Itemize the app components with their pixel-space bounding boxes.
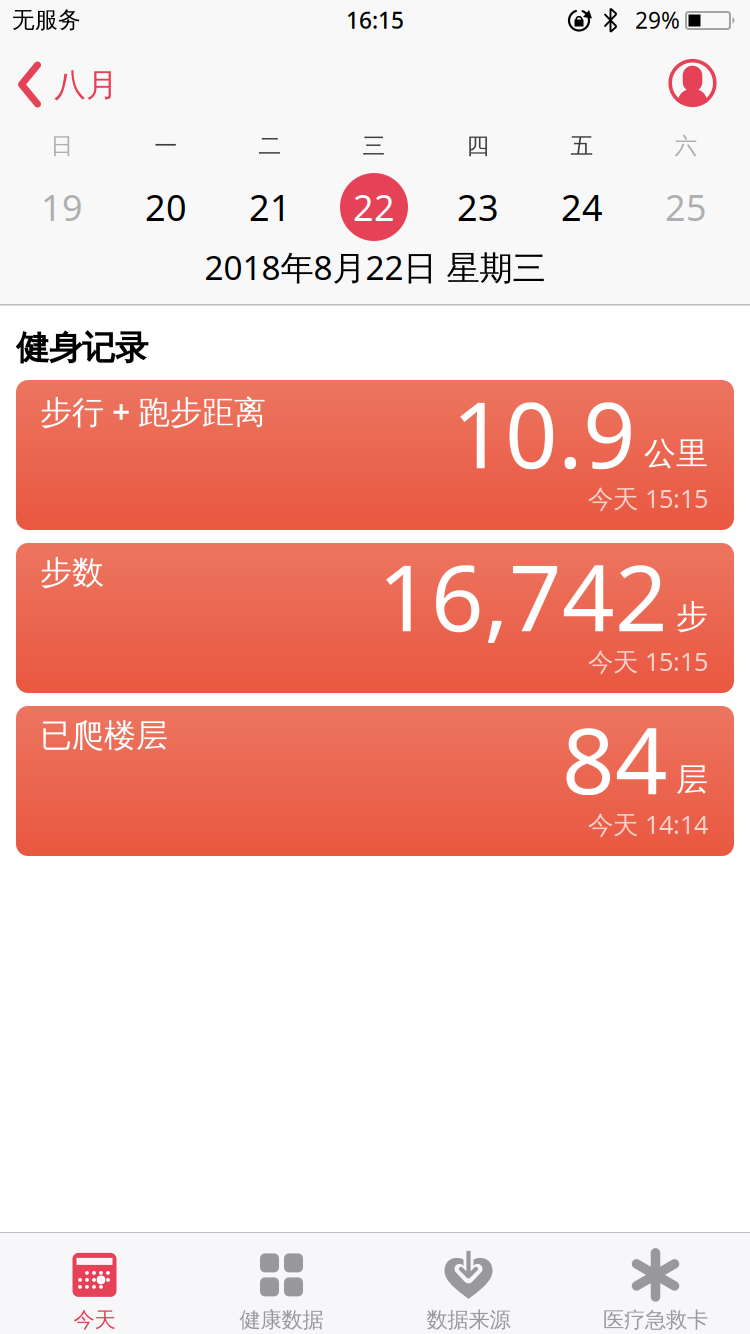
button[interactable]: 19 bbox=[10, 169, 114, 245]
staticText: 二 bbox=[258, 132, 281, 160]
staticText: 今天 15:15 bbox=[588, 481, 708, 515]
button[interactable]: 医疗急救卡 bbox=[562, 1233, 749, 1333]
button[interactable]: 22 bbox=[322, 169, 426, 245]
staticText: 步行 + 跑步距离 bbox=[40, 390, 266, 432]
staticText: 21 bbox=[249, 183, 291, 231]
staticText: 16:15 bbox=[346, 5, 404, 35]
staticText: 19 bbox=[41, 183, 83, 231]
staticText: 数据来源 bbox=[426, 1307, 510, 1333]
staticText: 一 bbox=[154, 132, 177, 160]
staticText: 四 bbox=[466, 132, 489, 160]
button[interactable]: 24 bbox=[530, 169, 634, 245]
button[interactable]: 步行 + 跑步距离 bbox=[16, 380, 734, 530]
button[interactable]: 健康数据 bbox=[188, 1233, 375, 1333]
staticText: 今天 bbox=[73, 1307, 115, 1333]
staticText: 22 bbox=[353, 183, 395, 231]
button[interactable] bbox=[662, 40, 722, 126]
staticText: 今天 15:15 bbox=[588, 644, 708, 678]
staticText: 三 bbox=[362, 132, 385, 160]
staticText: 步数 bbox=[40, 553, 104, 592]
staticText: 24 bbox=[561, 183, 603, 231]
staticText: 25 bbox=[665, 183, 707, 231]
staticText: 六 bbox=[674, 132, 697, 160]
button[interactable]: 步数 bbox=[16, 543, 734, 693]
staticText: 16,742 bbox=[378, 534, 668, 657]
staticText: 公里 bbox=[644, 434, 708, 473]
staticText: 医疗急救卡 bbox=[603, 1307, 708, 1333]
staticText: 2018年8月22日 星期三 bbox=[204, 245, 545, 289]
staticText: 五 bbox=[570, 132, 593, 160]
button[interactable]: 21 bbox=[218, 169, 322, 245]
staticText: 今天 14:14 bbox=[588, 807, 708, 841]
staticText: 29% bbox=[635, 5, 680, 35]
button[interactable]: 八月 bbox=[0, 40, 400, 126]
staticText: 已爬楼层 bbox=[40, 716, 168, 755]
staticText: 20 bbox=[145, 183, 187, 231]
staticText: 八月 bbox=[54, 65, 118, 105]
staticText: 84 bbox=[562, 697, 668, 820]
staticText: 层 bbox=[676, 760, 708, 799]
staticText: 健身记录 bbox=[16, 327, 148, 368]
staticText: 步 bbox=[676, 597, 708, 636]
button[interactable]: 25 bbox=[634, 169, 738, 245]
staticText: 无服务 bbox=[12, 6, 81, 34]
button[interactable]: 23 bbox=[426, 169, 530, 245]
button[interactable]: 已爬楼层 bbox=[16, 706, 734, 856]
button[interactable]: 今天 bbox=[1, 1233, 188, 1333]
button[interactable]: 数据来源 bbox=[375, 1233, 562, 1333]
staticText: 10.9 bbox=[452, 371, 636, 494]
staticText: 日 bbox=[50, 132, 73, 160]
staticText: 23 bbox=[457, 183, 499, 231]
staticText: 健康数据 bbox=[239, 1307, 323, 1333]
button[interactable]: 20 bbox=[114, 169, 218, 245]
